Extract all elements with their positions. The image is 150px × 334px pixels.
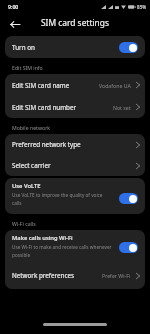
staticText: Make calls using Wi-Fi [12,234,73,242]
staticText: Preferred network type [12,140,81,149]
button[interactable]: Edit SIM card name [5,74,145,96]
button[interactable]: Make calls using Wi-Fi [5,230,145,262]
staticText: 85% [137,4,147,10]
button[interactable]: Preferred network type [5,134,145,155]
button[interactable]: Use VoLTE [5,178,145,214]
button[interactable]: Toggle [119,193,138,204]
staticText: Wi-Fi calls [12,220,36,227]
staticText: Mobile network [12,124,51,131]
staticText: 9:00 [8,3,19,10]
staticText: Use Wi-Fi to make and receive calls when… [12,244,119,258]
staticText: Use VoLTE to improve the quality of voic… [12,192,113,206]
button[interactable]: Toggle [119,42,138,53]
staticText: Turn on [12,43,35,52]
staticText: Select carrier [12,161,51,170]
staticText: Vodafone UA [99,82,131,89]
staticText: Edit SIM card name [12,81,70,90]
staticText: Use VoLTE [12,182,41,190]
staticText: Not set [113,104,131,111]
button[interactable]: Turn on [5,36,145,58]
button[interactable]: Select carrier [5,155,145,176]
staticText: Prefer Wi-Fi [102,272,131,279]
button[interactable]: Edit SIM card number [5,96,145,118]
button[interactable]: Network preferences [5,262,145,289]
button[interactable]: Back [5,14,25,34]
staticText: Network preferences [12,271,75,280]
staticText: SIM card settings [41,17,109,28]
staticText: Edit SIM card number [12,103,77,112]
staticText: Edit SIM info [12,64,43,71]
button[interactable]: Toggle [119,242,138,253]
